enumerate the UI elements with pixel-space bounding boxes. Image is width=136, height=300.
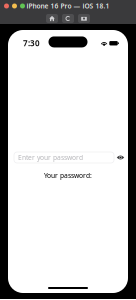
button[interactable]: Home: [45, 13, 59, 24]
button[interactable]: Rotate: [61, 13, 75, 24]
staticText: 7:30: [23, 38, 40, 48]
staticText: Enter your password: [18, 153, 83, 162]
button[interactable]: Show password: [116, 152, 125, 163]
staticText: iPhone 16 Pro — iOS 18.1: [26, 2, 109, 10]
staticText: Your password:: [44, 171, 92, 180]
button[interactable]: Screenshot: [77, 13, 91, 24]
